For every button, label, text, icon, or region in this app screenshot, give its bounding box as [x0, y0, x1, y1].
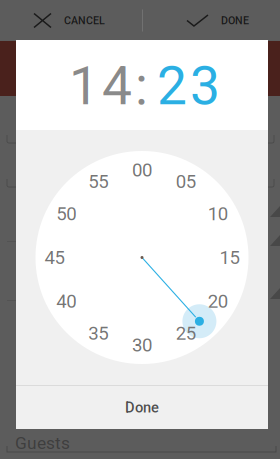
staticText: 45	[44, 247, 64, 268]
staticText: Done	[125, 399, 159, 416]
button[interactable]: CANCEL	[0, 0, 142, 41]
staticText: DONE	[221, 14, 249, 27]
staticText: 50	[56, 203, 76, 225]
staticText: 00	[132, 159, 152, 181]
staticText: 25	[176, 322, 196, 344]
button[interactable]: Done	[16, 386, 268, 429]
staticText: 05	[176, 171, 196, 193]
staticText: 23	[157, 55, 220, 117]
staticText: 20	[208, 290, 228, 312]
staticText: 10	[208, 203, 228, 225]
button[interactable]: DONE	[143, 0, 280, 41]
staticText: 15	[219, 247, 239, 268]
staticText: 30	[132, 334, 152, 356]
staticText: 35	[88, 322, 108, 344]
staticText: 55	[88, 171, 108, 193]
staticText: 14:	[69, 55, 148, 117]
staticText: Guests	[15, 433, 70, 453]
staticText: CANCEL	[64, 14, 105, 27]
staticText: 40	[56, 290, 76, 312]
